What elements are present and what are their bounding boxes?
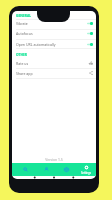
staticText: Vibrate [16, 21, 28, 26]
button[interactable]: Profile [36, 163, 56, 176]
button[interactable]: Autofocus [12, 28, 96, 38]
button[interactable]: Settings [76, 163, 96, 176]
button[interactable]: Rate us [12, 58, 96, 68]
button[interactable]: Share app [12, 68, 96, 78]
staticText: Version 1.5 [12, 157, 96, 162]
staticText: OTHER [16, 52, 27, 56]
staticText: GENERAL [16, 13, 32, 17]
button[interactable]: Search [15, 163, 36, 176]
staticText: Settings [81, 171, 91, 175]
staticText: Share app [16, 71, 33, 76]
button[interactable]: Explore [56, 163, 76, 176]
staticText: Autofocus [16, 31, 33, 36]
staticText: Open URL automatically [16, 42, 56, 47]
button[interactable]: Vibrate [12, 18, 96, 28]
button[interactable]: Open URL automatically [12, 39, 96, 49]
staticText: Rate us [16, 61, 29, 66]
